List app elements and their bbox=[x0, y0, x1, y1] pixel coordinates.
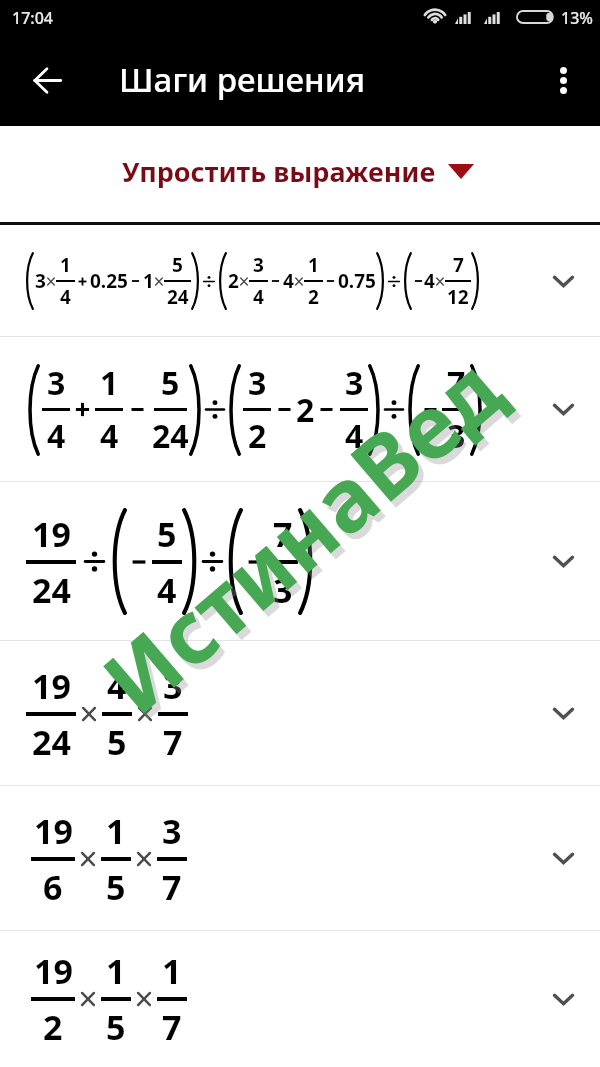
staticText: 24 bbox=[167, 284, 189, 310]
staticText: Шаги решения bbox=[119, 57, 366, 102]
staticText: 7 bbox=[162, 864, 182, 910]
staticText: Упростить выражение bbox=[122, 153, 436, 190]
staticText: 12 bbox=[447, 284, 469, 310]
staticText: 6 bbox=[43, 864, 63, 910]
staticText: 1 bbox=[106, 948, 126, 994]
staticText: 3 bbox=[273, 567, 293, 613]
staticText: 1 bbox=[308, 252, 319, 278]
staticText: 0.25 bbox=[90, 268, 128, 294]
staticText: ИстинаВед bbox=[77, 330, 525, 738]
staticText: 19 bbox=[34, 948, 73, 994]
staticText: 1 bbox=[162, 948, 182, 994]
staticText: 4 bbox=[60, 284, 71, 310]
staticText: 3 bbox=[35, 268, 46, 294]
staticText: 24 bbox=[32, 567, 71, 613]
staticText: 7 bbox=[447, 361, 466, 405]
staticText: 3 bbox=[447, 414, 466, 458]
staticText: 19 bbox=[32, 663, 71, 709]
button[interactable]: 3 bbox=[0, 225, 600, 337]
button[interactable]: 3 bbox=[0, 337, 600, 482]
staticText: 7 bbox=[453, 252, 464, 278]
button[interactable]: Back bbox=[19, 52, 75, 108]
staticText: 24 bbox=[152, 414, 189, 458]
staticText: 1 bbox=[143, 268, 154, 294]
staticText: 4 bbox=[100, 414, 119, 458]
staticText: 3 bbox=[248, 361, 267, 405]
staticText: 5 bbox=[107, 719, 127, 765]
staticText: 2 bbox=[308, 284, 319, 310]
button[interactable]: 19 bbox=[0, 641, 600, 786]
button[interactable]: 19 bbox=[0, 931, 600, 1067]
staticText: 5 bbox=[106, 1004, 126, 1050]
staticText: 3 bbox=[163, 663, 183, 709]
staticText: 3 bbox=[253, 252, 264, 278]
staticText: 5 bbox=[157, 511, 177, 557]
staticText: 4 bbox=[345, 414, 364, 458]
staticText: 1 bbox=[106, 808, 126, 854]
staticText: 3 bbox=[47, 361, 66, 405]
button[interactable]: More options bbox=[535, 52, 591, 108]
staticText: 2 bbox=[248, 414, 267, 458]
staticText: 5 bbox=[161, 361, 180, 405]
staticText: ИстинаВед bbox=[82, 336, 530, 744]
button[interactable]: 19 bbox=[0, 786, 600, 931]
staticText: 5 bbox=[172, 252, 183, 278]
staticText: 4 bbox=[47, 414, 66, 458]
staticText: 1 bbox=[100, 361, 119, 405]
staticText: 3 bbox=[162, 808, 182, 854]
staticText: 13% bbox=[561, 7, 593, 29]
staticText: 2 bbox=[296, 388, 315, 432]
staticText: 4 bbox=[424, 268, 435, 294]
staticText: 0.75 bbox=[338, 268, 376, 294]
staticText: 19 bbox=[34, 808, 73, 854]
staticText: 7 bbox=[273, 511, 293, 557]
staticText: 5 bbox=[106, 864, 126, 910]
staticText: 2 bbox=[43, 1004, 63, 1050]
staticText: 7 bbox=[162, 1004, 182, 1050]
staticText: 4 bbox=[107, 663, 127, 709]
staticText: 4 bbox=[157, 567, 177, 613]
button[interactable]: 19 bbox=[0, 482, 600, 641]
staticText: 24 bbox=[32, 719, 71, 765]
staticText: 3 bbox=[345, 361, 364, 405]
staticText: 2 bbox=[228, 268, 239, 294]
staticText: 7 bbox=[163, 719, 183, 765]
staticText: 1 bbox=[60, 252, 71, 278]
staticText: 17:04 bbox=[12, 7, 53, 29]
staticText: 4 bbox=[253, 284, 264, 310]
staticText: 4 bbox=[283, 268, 294, 294]
staticText: 19 bbox=[32, 511, 71, 557]
button[interactable]: Упростить выражение bbox=[0, 126, 600, 222]
